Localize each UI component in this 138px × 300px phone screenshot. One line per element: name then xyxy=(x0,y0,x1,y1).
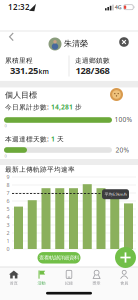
staticText: 0 xyxy=(4,153,6,159)
staticText: 0 xyxy=(6,245,9,253)
staticText: 128/368 xyxy=(75,64,109,77)
staticText: km xyxy=(38,67,48,76)
staticText: 走過鄉鎮數 xyxy=(75,56,110,65)
staticText: 6 xyxy=(6,197,9,205)
staticText: 14,281 xyxy=(51,103,73,111)
staticText: 會員 xyxy=(120,281,128,285)
staticText: 1 xyxy=(51,135,55,143)
staticText: 9 xyxy=(6,173,9,181)
button[interactable]: 獎章 xyxy=(83,266,110,288)
staticText: 本週達標天數: xyxy=(5,135,51,143)
staticText: 5 xyxy=(6,205,9,213)
staticText: 3 xyxy=(6,221,9,229)
staticText: 8 xyxy=(6,181,9,189)
staticText: 100% xyxy=(114,115,132,124)
staticText: 2 xyxy=(6,229,9,237)
staticText: 20% xyxy=(115,146,129,154)
staticText: 獎章 xyxy=(93,281,101,285)
staticText: 步 xyxy=(73,103,82,111)
staticText: 331.25 xyxy=(10,64,38,77)
staticText: 首頁 xyxy=(10,281,18,285)
button[interactable]: Add xyxy=(115,247,136,268)
staticText: 4G xyxy=(115,4,122,11)
staticText: 活動 xyxy=(37,281,45,285)
button[interactable]: 查看軌跡詳細資料 xyxy=(37,252,80,264)
staticText: 個人目標 xyxy=(5,90,37,100)
staticText: 1 xyxy=(6,237,9,245)
staticText: 今日累計步數: xyxy=(5,103,51,111)
button[interactable]: 首頁 xyxy=(0,266,27,288)
staticText: 紀錄 xyxy=(65,281,73,285)
button[interactable]: 活動 xyxy=(28,266,55,288)
button[interactable]: Close xyxy=(119,37,129,47)
button[interactable]: 紀錄 xyxy=(55,266,82,288)
staticText: 最新上傳軌跡平均速率 xyxy=(5,165,75,174)
staticText: 天 xyxy=(55,135,64,143)
button[interactable]: 會員 xyxy=(111,266,138,288)
staticText: 平均6.9km/h xyxy=(104,191,126,197)
staticText: 累積里程 xyxy=(5,56,33,65)
staticText: 0 xyxy=(4,123,6,128)
staticText: 4 xyxy=(6,213,9,221)
staticText: 朱清榮 xyxy=(64,39,88,48)
staticText: 12:32 xyxy=(8,2,30,12)
staticText: 查看軌跡詳細資料 xyxy=(39,254,79,261)
staticText: 7 xyxy=(6,189,9,197)
